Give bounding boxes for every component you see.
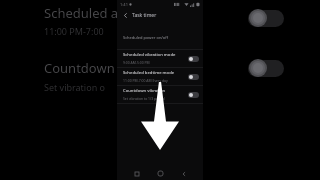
button[interactable]: Scheduled vibration mode bbox=[117, 50, 203, 67]
staticText: Set vibration o bbox=[44, 81, 105, 93]
staticText: Scheduled a bbox=[44, 4, 119, 22]
button[interactable]: Recent apps bbox=[132, 169, 141, 178]
button[interactable]: Toggle bbox=[188, 92, 199, 98]
staticText: Task timer bbox=[132, 12, 157, 19]
button[interactable]: Home bbox=[156, 169, 165, 178]
staticText: Scheduled bedtime mode bbox=[123, 70, 175, 76]
staticText: Countdown v bbox=[44, 59, 125, 77]
button[interactable]: Scheduled bedtime mode bbox=[117, 68, 203, 85]
staticText: 9:00 AM-5:00 PM bbox=[123, 60, 150, 65]
staticText: Scheduled power on/off bbox=[123, 35, 169, 40]
staticText: Countdown vibration bbox=[123, 88, 166, 94]
staticText: Set vibration to 1/3 period bbox=[123, 96, 165, 101]
staticText: 11:00 PM-7:00 AM Every day bbox=[123, 78, 168, 83]
button[interactable]: Back bbox=[179, 169, 188, 178]
button[interactable]: Back bbox=[121, 11, 129, 19]
button[interactable]: Toggle bbox=[188, 56, 199, 62]
button[interactable]: Countdown vibration bbox=[117, 86, 203, 103]
staticText: 1:41 bbox=[120, 2, 128, 7]
button[interactable]: Toggle bbox=[188, 74, 199, 80]
staticText: 11:00 PM-7:00 bbox=[44, 25, 104, 37]
button[interactable]: Back bbox=[117, 8, 203, 22]
staticText: Scheduled vibration mode bbox=[123, 52, 176, 58]
